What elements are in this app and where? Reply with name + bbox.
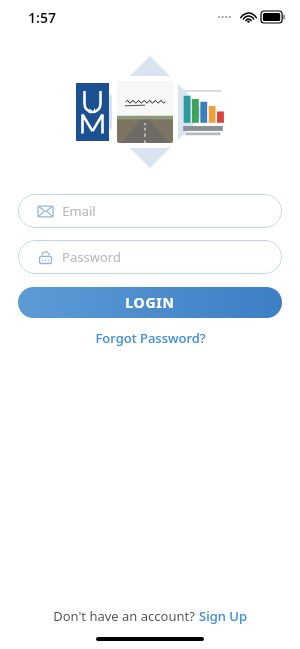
staticText: Sign Up <box>199 607 247 625</box>
button[interactable]: Forgot Password? <box>89 326 212 350</box>
staticText: 1:57 <box>28 8 56 27</box>
button[interactable]: Sign Up <box>197 605 249 627</box>
button[interactable]: Email <box>18 194 282 228</box>
staticText: Forgot Password? <box>95 329 206 347</box>
staticText: Email <box>62 202 96 220</box>
staticText: Don't have an account? <box>51 607 197 625</box>
button[interactable]: LOGIN <box>18 287 282 318</box>
staticText: Password <box>62 248 121 266</box>
staticText: LOGIN <box>125 293 175 312</box>
button[interactable]: Password <box>18 240 282 274</box>
